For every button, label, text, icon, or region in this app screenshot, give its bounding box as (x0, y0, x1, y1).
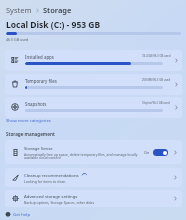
staticText: On (144, 150, 150, 155)
staticText: Installed apps (25, 54, 54, 60)
staticText: 46.5 GB used (6, 37, 29, 42)
button[interactable]: System (6, 5, 32, 15)
staticText: Automatically free up space, delete temp… (24, 152, 138, 160)
staticText: 0 bytes/96.3 GB used (142, 101, 170, 105)
button[interactable]: Installed apps (5, 50, 182, 71)
button[interactable]: Advanced storage settings (5, 190, 182, 207)
staticText: Storage management (6, 131, 55, 137)
staticText: Get help (13, 211, 31, 217)
button[interactable]: Storage Sense on (153, 149, 168, 156)
staticText: Temporary files (25, 78, 57, 84)
staticText: Cleanup recommendations (24, 172, 79, 178)
button[interactable]: Cleanup recommendations (5, 168, 182, 187)
staticText: 74.4 GB/96.3 GB used (142, 54, 171, 58)
staticText: Storage (43, 5, 72, 15)
staticText: Looking for items to clean (24, 179, 66, 184)
button[interactable]: Show more categories (6, 117, 51, 123)
staticText: Local Disk (C:) - 953 GB (6, 19, 101, 31)
button[interactable]: Temporary files (5, 74, 182, 95)
button[interactable]: Snapshots (5, 97, 182, 118)
button[interactable]: Storage Sense (5, 140, 182, 164)
staticText: Advanced storage settings (24, 193, 78, 199)
button[interactable]: Get help (5, 211, 31, 217)
staticText: Backup options, Storage Spaces, other di… (24, 200, 95, 205)
staticText: 258 MB/96.3 GB used (142, 78, 171, 82)
staticText: Snapshots (25, 101, 47, 107)
staticText: Storage Sense (24, 145, 53, 151)
